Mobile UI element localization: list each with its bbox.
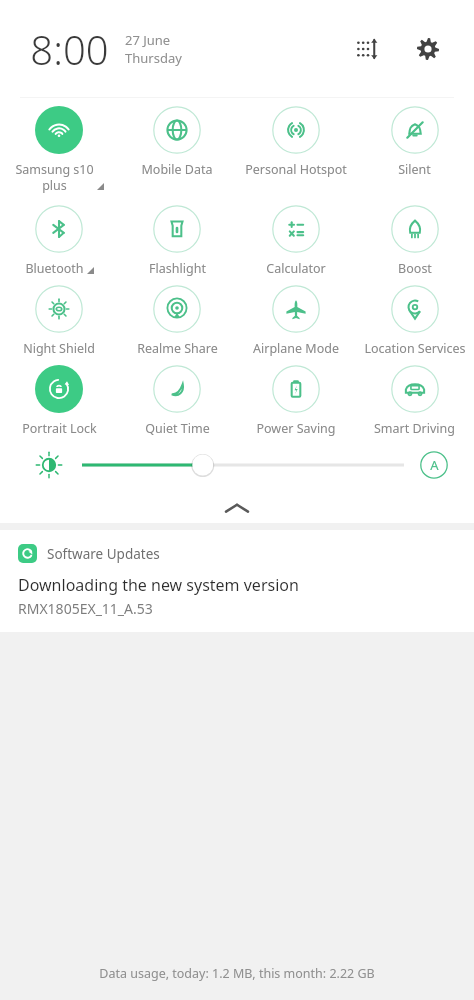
button[interactable]: Brightness: [34, 450, 64, 480]
staticText: Portrait Lock: [22, 420, 97, 437]
staticText: Power Saving: [256, 420, 336, 437]
staticText: Data usage, today: 1.2 MB, this month: 2…: [99, 965, 375, 982]
staticText: Quiet Time: [145, 420, 210, 437]
button[interactable]: Mobile Data: [118, 106, 236, 178]
button[interactable]: Silent: [355, 106, 474, 178]
button[interactable]: Power Saving: [236, 365, 355, 437]
button[interactable]: Personal Hotspot: [236, 106, 355, 178]
staticText: Bluetooth: [25, 260, 84, 277]
staticText: 27 June: [125, 31, 171, 49]
staticText: Software Updates: [47, 545, 160, 563]
button[interactable]: Flashlight: [118, 205, 236, 277]
button[interactable]: Edit tiles: [348, 29, 388, 69]
staticText: Location Services: [364, 340, 466, 357]
button[interactable]: Smart Driving: [355, 365, 474, 437]
button[interactable]: Realme Share: [118, 285, 236, 357]
button[interactable]: Location Services: [355, 285, 474, 357]
staticText: Silent: [398, 161, 431, 178]
staticText: Night Shield: [23, 340, 95, 357]
button[interactable]: Bluetooth: [0, 205, 118, 277]
staticText: A: [430, 456, 439, 474]
button[interactable]: Calculator: [236, 205, 355, 277]
button[interactable]: Brightness slider: [82, 452, 404, 478]
button[interactable]: Portrait Lock: [0, 365, 118, 437]
staticText: RMX1805EX_11_A.53: [18, 599, 153, 618]
button[interactable]: Night Shield: [0, 285, 118, 357]
staticText: Samsung s10 plus: [15, 161, 94, 193]
staticText: Boost: [398, 260, 432, 277]
staticText: Realme Share: [137, 340, 218, 357]
staticText: Calculator: [266, 260, 326, 277]
button[interactable]: Software Updates: [0, 530, 474, 632]
button[interactable]: Auto brightness: [420, 451, 448, 479]
button[interactable]: Boost: [355, 205, 474, 277]
staticText: Airplane Mode: [253, 340, 339, 357]
staticText: Smart Driving: [374, 420, 455, 437]
staticText: Mobile Data: [141, 161, 213, 178]
button[interactable]: Settings: [408, 29, 448, 69]
button[interactable]: Airplane Mode: [236, 285, 355, 357]
button[interactable]: Samsung s10 plus: [0, 106, 118, 193]
staticText: Personal Hotspot: [245, 161, 347, 178]
staticText: Downloading the new system version: [18, 574, 299, 596]
staticText: Thursday: [125, 49, 182, 67]
staticText: Flashlight: [149, 260, 206, 277]
button[interactable]: Collapse: [0, 493, 474, 523]
button[interactable]: Quiet Time: [118, 365, 236, 437]
staticText: 8:00: [30, 22, 109, 76]
